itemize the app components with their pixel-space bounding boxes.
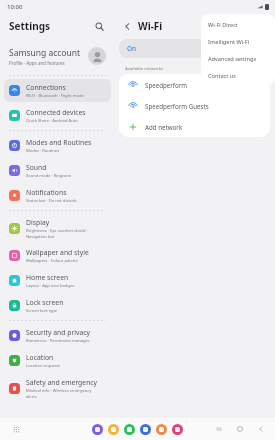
staticText: Lock screen	[26, 298, 64, 307]
staticText: Wallpaper and style	[26, 248, 89, 257]
button[interactable]: Lock screen	[4, 294, 111, 317]
staticText: Layout · App icon badges	[26, 283, 75, 289]
button[interactable]: On	[119, 39, 270, 58]
button[interactable]: app3	[124, 424, 135, 435]
button[interactable]: Home	[234, 423, 246, 435]
staticText: Notifications	[26, 188, 67, 197]
staticText: Wi-Fi Direct	[208, 21, 238, 29]
staticText: Available networks	[125, 65, 163, 71]
staticText: Modes · Routines	[26, 148, 60, 154]
button[interactable]: app6	[172, 424, 183, 435]
button[interactable]: Wallpaper and style	[4, 244, 111, 267]
staticText: 10:00	[7, 3, 23, 11]
staticText: Location	[26, 353, 54, 362]
staticText: Wallpapers · Colour palette	[26, 258, 78, 264]
button[interactable]: Sound	[4, 159, 111, 182]
staticText: Security and privacy	[26, 328, 90, 337]
staticText: Contact us	[208, 72, 236, 80]
button[interactable]: Recents	[213, 423, 225, 435]
button[interactable]: Back	[120, 19, 134, 33]
staticText: Home screen	[26, 273, 69, 282]
button[interactable]: app1	[92, 424, 103, 435]
staticText: Connected devices	[26, 108, 86, 117]
staticText: On	[127, 44, 137, 53]
staticText: Add network	[145, 123, 183, 131]
button[interactable]: Location	[4, 349, 111, 372]
staticText: Intelligent Wi-Fi	[208, 38, 250, 46]
button[interactable]: Display	[4, 214, 111, 242]
staticText: Quick Share · Android Auto	[26, 118, 78, 124]
staticText: Connections	[26, 83, 66, 92]
staticText: Screen lock type	[26, 308, 58, 314]
staticText: Sound	[26, 163, 47, 172]
button[interactable]: Connected devices	[4, 104, 111, 127]
staticText: Modes and Routines	[26, 138, 92, 147]
staticText: Wi-Fi · Bluetooth · Flight mode	[26, 93, 84, 99]
staticText: Status bar · Do not disturb	[26, 198, 77, 204]
button[interactable]: Intelligent Wi-Fi	[201, 33, 275, 50]
staticText: Brightness · Eye comfort shield · Naviga…	[26, 228, 88, 239]
button[interactable]: Wi-Fi Direct	[201, 16, 275, 33]
staticText: Samsung account	[9, 47, 81, 59]
button[interactable]: Add network	[119, 116, 270, 137]
button[interactable]: Back	[255, 423, 267, 435]
button[interactable]: Samsung account	[0, 39, 115, 73]
button[interactable]: Connections	[4, 79, 111, 102]
button[interactable]: Search	[91, 18, 107, 34]
button[interactable]: Safety and emergency	[4, 374, 111, 402]
button[interactable]: app4	[140, 424, 151, 435]
staticText: Wi-Fi	[138, 19, 163, 33]
staticText: Medical info · Wireless emergency alerts	[26, 388, 92, 399]
button[interactable]: Advanced settings	[201, 50, 275, 67]
staticText: Settings	[9, 19, 50, 33]
button[interactable]: Speedperform	[119, 74, 270, 95]
staticText: Profile · Apps and features	[9, 60, 65, 66]
button[interactable]: All apps	[9, 422, 23, 436]
button[interactable]: Speedperform Guests	[119, 95, 270, 116]
staticText: Speedperform	[145, 81, 188, 89]
staticText: Sound mode · Ringtone	[26, 173, 72, 179]
button[interactable]: Notifications	[4, 184, 111, 207]
staticText: Display	[26, 218, 50, 227]
staticText: Biometrics · Permission manager	[26, 338, 90, 344]
button[interactable]: Security and privacy	[4, 324, 111, 347]
staticText: Advanced settings	[208, 55, 257, 63]
button[interactable]: app5	[156, 424, 167, 435]
button[interactable]: Modes and Routines	[4, 134, 111, 157]
button[interactable]: Contact us	[201, 67, 275, 84]
staticText: Safety and emergency	[26, 378, 98, 387]
staticText: Location requests	[26, 363, 61, 369]
button[interactable]: app2	[108, 424, 119, 435]
button[interactable]: Home screen	[4, 269, 111, 292]
staticText: Speedperform Guests	[145, 102, 209, 110]
